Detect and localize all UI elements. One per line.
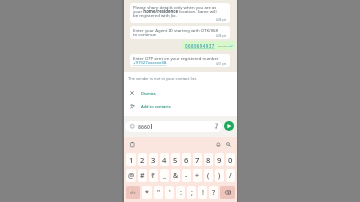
staticText: +: [195, 171, 200, 181]
button[interactable]: 8660: [125, 121, 222, 132]
button[interactable]: &: [171, 169, 180, 182]
staticText: 8: [206, 155, 211, 165]
button[interactable]: 3: [149, 153, 158, 166]
staticText: The sender is not in your contact list.: [128, 76, 197, 81]
button[interactable]: =\<: [126, 186, 140, 199]
staticText: 2: [140, 155, 145, 165]
button[interactable]: [130, 142, 135, 147]
button[interactable]: [226, 142, 231, 147]
staticText: 4:08 pm: [216, 18, 227, 22]
staticText: Dismiss: [141, 91, 156, 96]
staticText: 5: [173, 155, 178, 165]
staticText: _: [163, 171, 167, 181]
staticText: ): [218, 171, 221, 181]
staticText: ': [169, 188, 171, 198]
staticText: 9: [217, 155, 222, 165]
button[interactable]: 8: [204, 153, 213, 166]
staticText: 4:01 pm: [218, 44, 228, 47]
button[interactable]: 4: [160, 153, 169, 166]
staticText: ?: [212, 188, 216, 198]
staticText: Enter your Agent ID starting with OTK/06…: [133, 27, 219, 38]
button[interactable]: ?: [209, 186, 218, 199]
button[interactable]: 7: [193, 153, 202, 166]
button[interactable]: 9: [215, 153, 224, 166]
button[interactable]: [216, 142, 221, 147]
button[interactable]: 0: [226, 153, 235, 166]
staticText: -: [185, 171, 188, 181]
button[interactable]: Add to contacts: [130, 102, 230, 110]
staticText: !: [202, 188, 204, 198]
button[interactable]: [224, 121, 234, 131]
staticText: 8660: [138, 123, 150, 130]
staticText: (: [207, 171, 210, 181]
staticText: 0689694937: [185, 43, 215, 49]
button[interactable]: _: [160, 169, 169, 182]
staticText: 4:08 pm: [216, 34, 227, 38]
staticText: 4: [162, 155, 167, 165]
button[interactable]: ': [165, 186, 174, 199]
staticText: ;: [191, 188, 193, 198]
button[interactable]: 6: [182, 153, 191, 166]
staticText: ": [157, 188, 161, 198]
button[interactable]: [220, 186, 235, 199]
button[interactable]: :: [176, 186, 185, 199]
staticText: #: [140, 171, 145, 181]
staticText: 7: [195, 155, 200, 165]
button[interactable]: #: [138, 169, 147, 182]
staticText: &: [173, 171, 179, 181]
button[interactable]: ": [154, 186, 163, 199]
staticText: :: [180, 188, 182, 198]
staticText: =\<: [130, 190, 136, 195]
staticText: Please share details only when you are a…: [133, 4, 217, 19]
button[interactable]: ): [215, 169, 224, 182]
staticText: ₹: [151, 171, 156, 181]
button[interactable]: @: [126, 169, 136, 182]
button[interactable]: 2: [138, 153, 147, 166]
button[interactable]: /: [226, 169, 235, 182]
staticText: *: [145, 188, 149, 198]
staticText: 1: [129, 155, 134, 165]
staticText: 0: [228, 155, 233, 165]
button[interactable]: +: [193, 169, 202, 182]
staticText: /: [229, 171, 232, 181]
button[interactable]: !: [198, 186, 207, 199]
button[interactable]: ₹: [149, 169, 158, 182]
button[interactable]: (: [204, 169, 213, 182]
staticText: 3: [151, 155, 156, 165]
button[interactable]: *: [142, 186, 152, 199]
staticText: 4:01 pm: [216, 62, 227, 66]
button[interactable]: Dismiss: [130, 89, 230, 97]
button[interactable]: ;: [187, 186, 196, 199]
staticText: Enter OTP sent on your registered number…: [133, 55, 219, 66]
button[interactable]: -: [182, 169, 191, 182]
staticText: @: [128, 171, 135, 181]
staticText: Add to contacts: [141, 104, 171, 109]
staticText: 6: [184, 155, 189, 165]
button[interactable]: 1: [126, 153, 136, 166]
button[interactable]: 5: [171, 153, 180, 166]
